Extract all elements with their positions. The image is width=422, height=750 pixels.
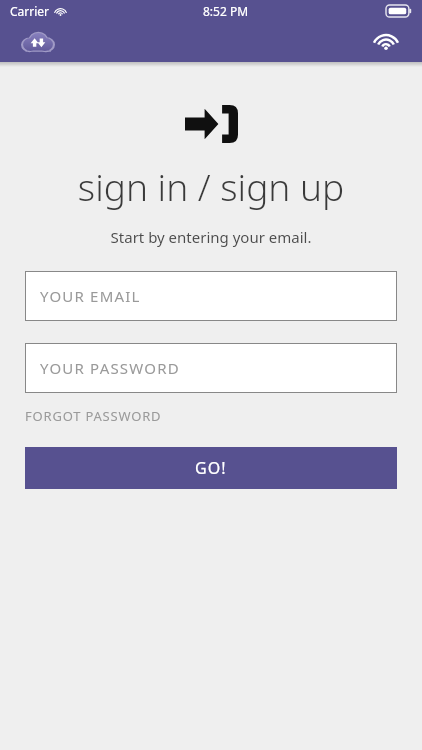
staticText: 8:52 PM xyxy=(203,3,249,19)
staticText: Start by entering your email. xyxy=(0,227,422,247)
button[interactable]: YOUR PASSWORD xyxy=(25,343,397,393)
staticText: FORGOT PASSWORD xyxy=(25,407,162,425)
staticText: GO! xyxy=(195,457,227,479)
button[interactable]: YOUR EMAIL xyxy=(25,271,397,321)
staticText: YOUR EMAIL xyxy=(40,286,141,306)
button[interactable]: FORGOT PASSWORD xyxy=(25,405,162,427)
button[interactable]: GO! xyxy=(25,447,397,489)
staticText: YOUR PASSWORD xyxy=(40,358,180,378)
button[interactable]: Network status xyxy=(368,24,404,60)
staticText: sign in / sign up xyxy=(0,161,422,211)
button[interactable]: Sync xyxy=(18,22,58,62)
staticText: Carrier xyxy=(10,3,50,19)
